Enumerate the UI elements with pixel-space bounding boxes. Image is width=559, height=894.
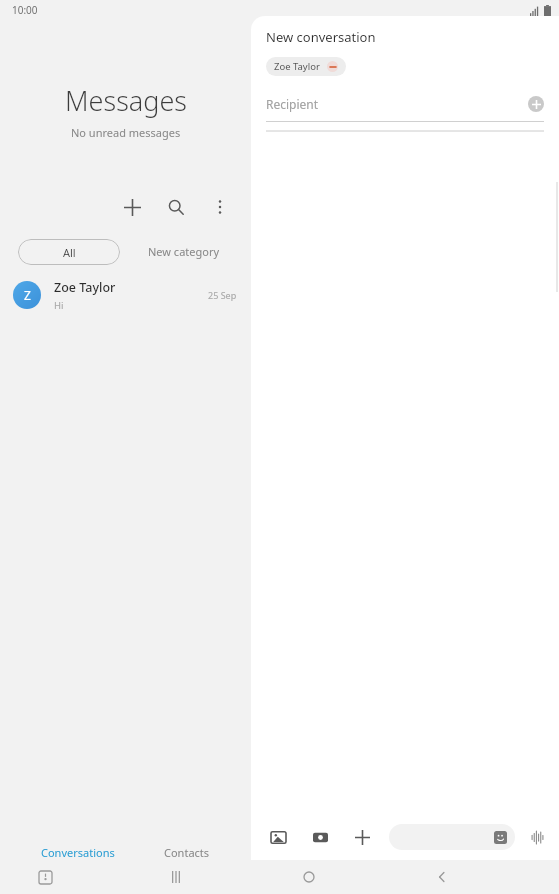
button[interactable]: New conversation — [115, 190, 149, 224]
staticText: 25 Sep — [208, 289, 237, 301]
staticText: Recipient — [266, 96, 319, 112]
staticText: New category — [148, 244, 220, 259]
staticText: Conversations — [41, 845, 115, 860]
button[interactable]: Contacts — [156, 841, 218, 868]
button[interactable]: Z — [0, 274, 251, 316]
staticText: Messages — [65, 82, 187, 119]
button[interactable]: Conversations — [33, 841, 123, 868]
button[interactable]: Stickers — [389, 824, 515, 850]
staticText: All — [63, 245, 76, 260]
staticText: Zoe Taylor — [274, 60, 320, 73]
button[interactable]: Add recipient — [528, 96, 544, 112]
staticText: Contacts — [164, 845, 210, 860]
button[interactable]: Camera — [307, 824, 333, 850]
button[interactable]: More options — [203, 190, 237, 224]
button[interactable]: New category — [144, 238, 224, 265]
other: Remove Zoe Taylor — [327, 61, 338, 72]
staticText: 10:00 — [12, 3, 38, 17]
button[interactable]: Voice message — [525, 825, 549, 849]
button[interactable]: Search — [159, 190, 193, 224]
staticText: New conversation — [266, 28, 376, 46]
button[interactable]: Recents — [159, 860, 193, 894]
button[interactable]: All — [18, 239, 120, 265]
button[interactable]: More attachments — [349, 824, 375, 850]
button[interactable]: Back — [425, 860, 459, 894]
button[interactable]: Hide keyboard — [30, 862, 60, 892]
button[interactable]: Zoe Taylor — [266, 57, 346, 76]
staticText: No unread messages — [71, 125, 181, 140]
staticText: Z — [24, 287, 31, 303]
other: Stickers — [494, 831, 507, 844]
button[interactable]: Home — [292, 860, 326, 894]
button[interactable]: Gallery — [265, 824, 291, 850]
staticText: Zoe Taylor — [54, 279, 116, 296]
staticText: Hi — [54, 299, 64, 312]
